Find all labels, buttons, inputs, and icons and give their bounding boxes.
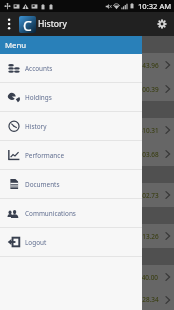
staticText: Dividend — [8, 145, 40, 155]
button[interactable]: Dividend — [0, 142, 174, 166]
button[interactable]: Dividend — [0, 289, 174, 310]
button[interactable]: Dividend — [0, 118, 174, 142]
staticText: $11,103.68 — [126, 150, 159, 159]
staticText: Accounts — [25, 64, 53, 73]
staticText: C — [23, 16, 32, 33]
staticText: Reinvestment — [8, 237, 47, 245]
button[interactable]: More options — [0, 12, 19, 36]
staticText: Documents — [25, 180, 60, 189]
staticText: Reinvestment — [8, 131, 47, 139]
button[interactable]: Settings — [150, 12, 174, 36]
staticText: History — [25, 122, 47, 131]
staticText: $24,100.39 — [126, 85, 159, 94]
button[interactable]: Holdings — [0, 83, 142, 111]
button[interactable]: Documents — [0, 170, 142, 198]
staticText: History — [38, 18, 67, 30]
staticText: $25,402.73 — [126, 191, 159, 200]
button[interactable]: History — [0, 112, 142, 140]
staticText: Reinvestment — [8, 155, 47, 163]
staticText: $11,528.34 — [126, 295, 159, 304]
staticText: Logout — [25, 238, 47, 247]
button[interactable]: Communications — [0, 199, 142, 227]
button[interactable]: Dividend — [0, 183, 174, 207]
staticText: Reinvestment — [8, 196, 47, 204]
staticText: $13,410.31 — [126, 126, 159, 135]
button[interactable]: Dividend — [0, 265, 174, 289]
button[interactable]: Accounts — [0, 54, 142, 82]
button[interactable]: Logout — [0, 228, 142, 256]
staticText: OCTOBER 2015 — [8, 211, 58, 221]
staticText: $16,113.26 — [126, 232, 159, 241]
staticText: Reinvestment — [8, 90, 47, 98]
staticText: $11,143.96 — [126, 61, 159, 70]
staticText: 10:32 AM — [138, 1, 172, 11]
staticText: $1,540.00 — [129, 273, 159, 282]
button[interactable]: Performance — [0, 141, 142, 169]
staticText: Dividend — [8, 56, 40, 66]
staticText: NOVEMBER 2015 — [8, 170, 64, 180]
button[interactable]: Dividend — [0, 53, 174, 77]
staticText: SEPTEMBER 2015 — [8, 252, 65, 262]
staticText: DECEMBER 2015 — [8, 105, 63, 115]
staticText: Reinvestment — [8, 66, 47, 74]
staticText: Dividend — [8, 186, 40, 196]
staticText: Dividend — [8, 227, 40, 237]
staticText: Holdings — [25, 93, 52, 102]
staticText: Performance — [25, 151, 64, 160]
button[interactable]: Dividend — [0, 224, 174, 248]
staticText: Dividend — [8, 80, 40, 90]
button[interactable]: Dividend — [0, 77, 174, 101]
staticText: JANUARY 2016 — [8, 40, 56, 50]
staticText: Menu — [5, 40, 27, 51]
staticText: Dividend — [8, 121, 40, 131]
staticText: Communications — [25, 209, 76, 218]
